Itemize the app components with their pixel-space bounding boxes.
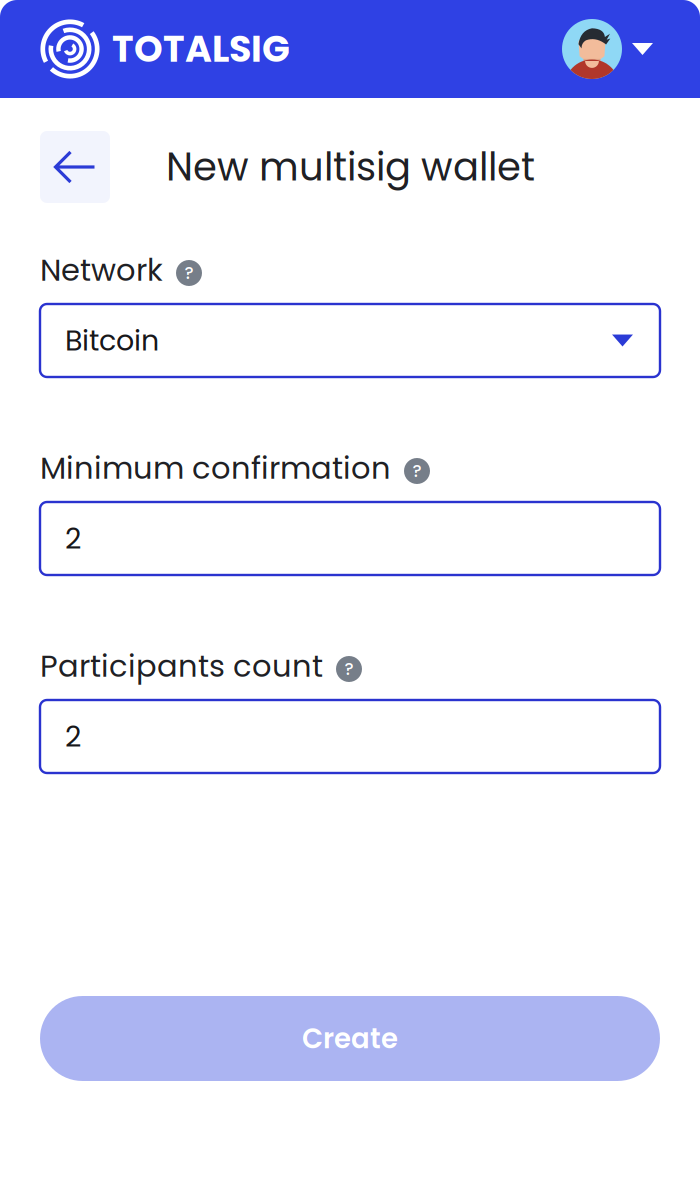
staticText: TOTALSIG xyxy=(112,23,290,74)
button[interactable]: Account menu xyxy=(562,9,653,89)
staticText: ? xyxy=(412,459,421,483)
staticText: Bitcoin xyxy=(65,321,159,360)
staticText: Create xyxy=(302,1019,398,1058)
staticText: Network xyxy=(40,249,163,291)
staticText: ? xyxy=(184,261,193,285)
staticText: ? xyxy=(344,657,353,681)
staticText: 2 xyxy=(65,717,81,756)
staticText: New multisig wallet xyxy=(166,140,535,194)
staticText: Minimum confirmation xyxy=(40,447,391,489)
button[interactable]: Create xyxy=(40,996,660,1081)
staticText: 2 xyxy=(65,519,81,558)
button[interactable]: Back xyxy=(40,131,110,203)
staticText: Participants count xyxy=(40,645,323,687)
